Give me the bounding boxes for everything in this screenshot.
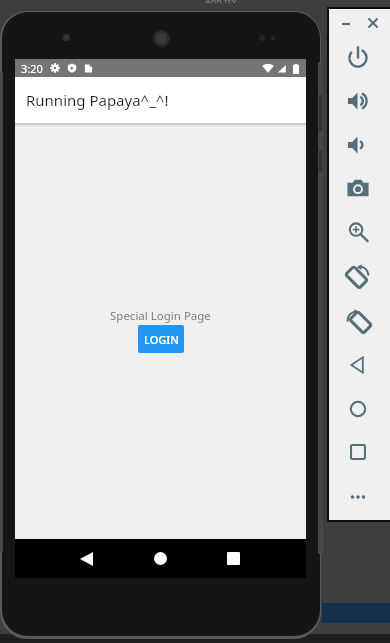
staticText: Special Login Page: [110, 308, 211, 324]
button[interactable]: LOGIN: [138, 325, 184, 353]
button[interactable]: More: [329, 483, 390, 511]
button[interactable]: Home: [140, 539, 180, 578]
staticText: 3:20: [21, 61, 43, 76]
button[interactable]: Rotate right: [329, 307, 390, 335]
button[interactable]: Overview: [329, 438, 390, 466]
button[interactable]: Back: [66, 539, 106, 578]
button[interactable]: Rotate left: [329, 262, 390, 290]
button[interactable]: Volume down: [329, 131, 390, 159]
staticText: Running Papaya^_^!: [26, 90, 169, 110]
button[interactable]: Home: [329, 395, 390, 423]
staticText: LOGIN: [144, 332, 179, 347]
button[interactable]: Take screenshot: [329, 174, 390, 202]
button[interactable]: Back: [329, 351, 390, 379]
button[interactable]: Recents: [213, 539, 253, 578]
staticText: App.tsx: [205, 0, 237, 3]
button[interactable]: Volume up: [329, 87, 390, 115]
button[interactable]: Close: [360, 10, 386, 36]
button[interactable]: Zoom in: [329, 218, 390, 246]
button[interactable]: Power: [329, 43, 390, 71]
button[interactable]: Minimize: [333, 11, 359, 37]
